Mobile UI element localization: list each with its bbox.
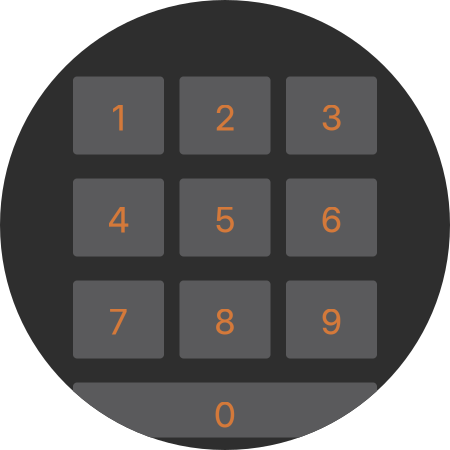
staticText: 2 xyxy=(215,97,235,139)
staticText: 7 xyxy=(109,301,128,343)
staticText: 6 xyxy=(321,199,342,241)
staticText: 1 xyxy=(112,97,125,139)
staticText: 8 xyxy=(214,301,235,343)
button[interactable]: 2 xyxy=(179,76,270,154)
button[interactable]: 9 xyxy=(286,280,377,358)
staticText: 4 xyxy=(107,199,129,241)
button[interactable]: 5 xyxy=(179,178,270,256)
button[interactable]: 6 xyxy=(286,178,377,256)
staticText: 0 xyxy=(214,394,236,436)
staticText: 9 xyxy=(321,301,342,343)
button[interactable]: 3 xyxy=(286,76,377,154)
button[interactable]: 7 xyxy=(73,280,164,358)
button[interactable]: 4 xyxy=(73,178,164,256)
staticText: 5 xyxy=(215,199,235,241)
button[interactable]: 8 xyxy=(179,280,270,358)
button[interactable]: 0 xyxy=(73,382,377,437)
button[interactable]: 1 xyxy=(73,76,164,154)
staticText: 3 xyxy=(321,97,342,139)
